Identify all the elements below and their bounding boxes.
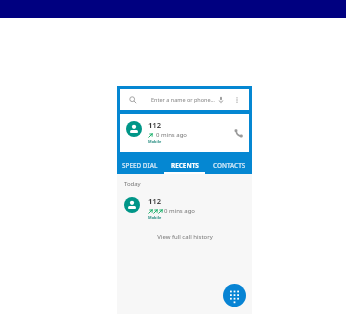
button[interactable]: 112 bbox=[117, 195, 252, 225]
button[interactable]: Voice search bbox=[217, 96, 225, 104]
staticText: Enter a name or phone… bbox=[151, 96, 215, 103]
staticText: SPEED DIAL bbox=[122, 161, 158, 170]
button[interactable]: SPEED DIAL bbox=[117, 155, 162, 174]
button[interactable]: Call bbox=[234, 129, 243, 138]
staticText: View full call history bbox=[157, 233, 213, 241]
staticText: Mobile bbox=[148, 139, 162, 144]
staticText: CONTACTS bbox=[213, 161, 246, 170]
staticText: 112 bbox=[148, 120, 162, 130]
button[interactable]: View full call history bbox=[117, 232, 252, 242]
button[interactable]: Dialpad bbox=[223, 284, 246, 307]
staticText: RECENTS bbox=[171, 161, 199, 170]
button[interactable]: RECENTS bbox=[162, 155, 207, 174]
staticText: 0 mins ago bbox=[164, 207, 195, 215]
staticText: Today bbox=[124, 180, 141, 188]
staticText: 0 mins ago bbox=[156, 131, 187, 139]
button[interactable]: Search bbox=[120, 89, 249, 110]
button[interactable]: More options bbox=[233, 96, 241, 104]
button[interactable]: CONTACTS bbox=[207, 155, 252, 174]
button[interactable]: 112 bbox=[120, 114, 249, 152]
other: Search bbox=[129, 96, 137, 104]
staticText: 112 bbox=[148, 196, 162, 206]
staticText: Mobile bbox=[148, 215, 162, 220]
